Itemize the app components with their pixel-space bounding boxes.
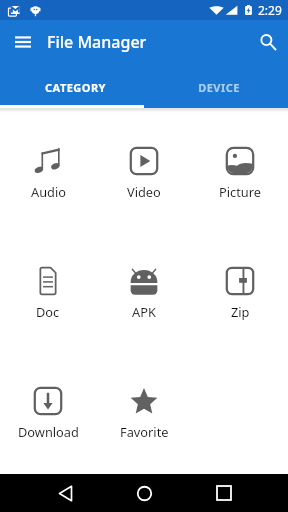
staticText: Favorite xyxy=(120,423,169,440)
button[interactable]: Open navigation menu xyxy=(6,25,40,59)
button[interactable]: Search xyxy=(251,25,285,59)
button[interactable]: Zip xyxy=(192,266,288,320)
button[interactable]: APK xyxy=(96,266,192,320)
staticText: Doc xyxy=(36,303,60,320)
button[interactable]: Doc xyxy=(0,266,96,320)
staticText: Video xyxy=(127,183,161,200)
button[interactable]: Home xyxy=(124,474,164,512)
staticText: Zip xyxy=(231,303,250,320)
button[interactable]: Audio xyxy=(0,146,96,200)
staticText: 2:29 xyxy=(258,2,282,18)
staticText: Audio xyxy=(31,183,66,200)
button[interactable]: CATEGORY xyxy=(0,68,144,108)
button[interactable]: Favorite xyxy=(96,386,192,440)
button[interactable]: Back xyxy=(45,474,85,512)
button[interactable]: Video xyxy=(96,146,192,200)
staticText: Download xyxy=(18,423,79,440)
staticText: CATEGORY xyxy=(45,80,106,95)
staticText: APK xyxy=(132,303,156,320)
staticText: DEVICE xyxy=(198,80,240,95)
staticText: File Manager xyxy=(47,31,147,53)
button[interactable]: Picture xyxy=(192,146,288,200)
staticText: Picture xyxy=(219,183,261,200)
button[interactable]: Download xyxy=(0,386,96,440)
button[interactable]: Recent apps xyxy=(204,474,244,512)
button[interactable]: DEVICE xyxy=(144,68,288,108)
